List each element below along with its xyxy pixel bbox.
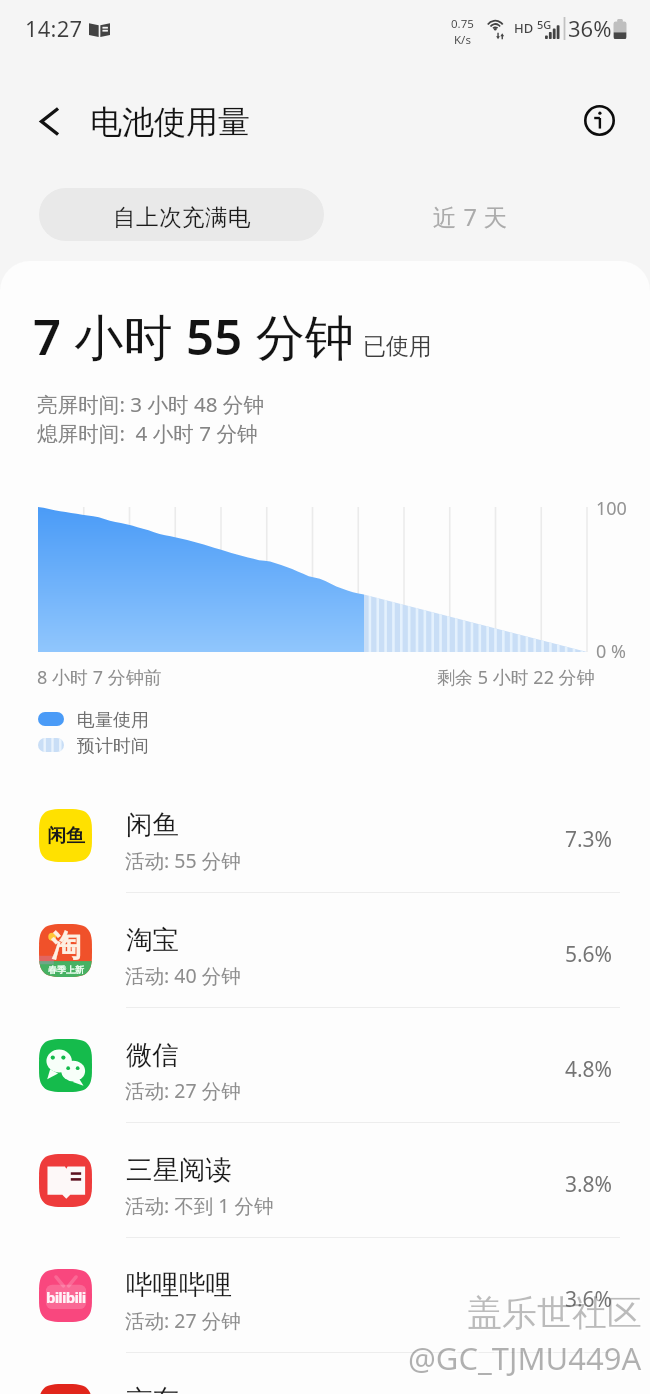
button[interactable]: Back: [21, 93, 78, 150]
button[interactable]: Information: [575, 96, 624, 145]
staticText: 100: [596, 496, 627, 521]
staticText: 闲鱼: [47, 824, 85, 848]
staticText: @GC_TJMU449A: [408, 1337, 642, 1379]
button[interactable]: bilibili: [0, 1238, 650, 1353]
staticText: 8 小时 7 分钟前: [37, 665, 162, 690]
button[interactable]: 自上次充满电: [39, 188, 324, 241]
staticText: 活动: 27 分钟: [125, 1077, 241, 1104]
staticText: 淘宝: [126, 923, 179, 956]
staticText: 盖乐世社区: [469, 1293, 644, 1337]
staticText: 0 %: [596, 639, 626, 664]
staticText: 三星阅读: [126, 1153, 232, 1186]
staticText: HD: [514, 19, 534, 37]
staticText: 5.6%: [480, 940, 612, 969]
staticText: 3.8%: [480, 1170, 612, 1199]
staticText: 自上次充满电: [113, 203, 251, 231]
button[interactable]: 淘: [0, 893, 650, 1008]
staticText: 微信: [126, 1038, 179, 1071]
staticText: 活动: 55 分钟: [125, 847, 241, 874]
staticText: 4.8%: [480, 1055, 612, 1084]
staticText: @GC_TJMU449A: [410, 1339, 644, 1381]
staticText: 电池使用量: [90, 102, 250, 142]
staticText: 京东: [126, 1383, 179, 1394]
staticText: 已使用: [363, 332, 432, 361]
button[interactable]: 三星阅读: [0, 1123, 650, 1238]
staticText: 剩余 5 小时 22 分钟: [437, 665, 595, 690]
staticText: 预计时间: [77, 735, 149, 755]
staticText: 闲鱼: [126, 808, 179, 841]
staticText: 亮屏时间: 3 小时 48 分钟: [37, 390, 265, 418]
staticText: K/s: [454, 32, 471, 48]
staticText: 5G: [537, 17, 552, 32]
button[interactable]: 闲鱼: [0, 778, 650, 893]
button[interactable]: JD: [0, 1353, 650, 1394]
staticText: 7.3%: [480, 825, 612, 854]
staticText: 电量使用: [77, 709, 149, 729]
button[interactable]: 近 7 天: [347, 188, 594, 241]
staticText: 春季上新: [48, 964, 84, 975]
staticText: 0.75: [451, 16, 474, 32]
staticText: 活动: 不到 1 分钟: [125, 1192, 274, 1219]
staticText: 哔哩哔哩: [126, 1268, 232, 1301]
staticText: 近 7 天: [433, 201, 508, 233]
staticText: 36%: [568, 13, 612, 43]
staticText: 盖乐世社区: [467, 1291, 642, 1335]
staticText: 淘: [51, 927, 81, 965]
staticText: 7 小时 55 分钟: [33, 303, 355, 370]
staticText: 活动: 27 分钟: [125, 1307, 241, 1334]
staticText: 熄屏时间: 4 小时 7 分钟: [37, 419, 258, 447]
button[interactable]: 微信: [0, 1008, 650, 1123]
staticText: 3.6%: [480, 1285, 612, 1314]
staticText: bilibili: [46, 1287, 86, 1307]
staticText: 14:27: [25, 13, 83, 43]
staticText: 活动: 40 分钟: [125, 962, 241, 989]
